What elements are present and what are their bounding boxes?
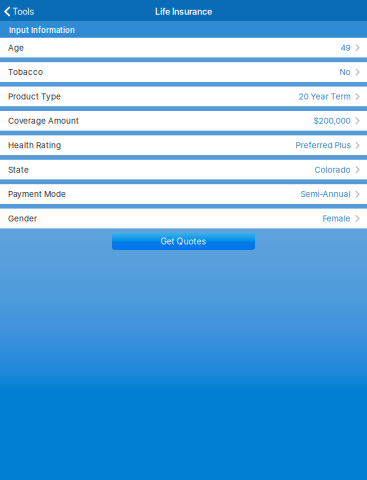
staticText: Product Type	[8, 92, 61, 101]
button[interactable]: Payment Mode	[0, 184, 367, 204]
staticText: Semi-Annual	[300, 189, 350, 199]
button[interactable]: State	[0, 160, 367, 180]
staticText: Health Rating	[8, 140, 61, 150]
staticText: Preferred Plus	[295, 140, 350, 150]
button[interactable]: Back to Tools	[0, 1, 40, 22]
staticText: Colorado	[314, 165, 350, 175]
button[interactable]: Gender	[0, 209, 367, 228]
staticText: 49	[340, 43, 350, 53]
staticText: No	[339, 67, 350, 77]
button[interactable]: Coverage Amount	[0, 111, 367, 131]
staticText: Gender	[8, 214, 37, 223]
button[interactable]: Health Rating	[0, 135, 367, 155]
staticText: 20 Year Term	[298, 92, 350, 101]
button[interactable]: Product Type	[0, 87, 367, 106]
staticText: Age	[8, 43, 24, 53]
button[interactable]: Tobacco	[0, 62, 367, 82]
button[interactable]: Age	[0, 38, 367, 58]
staticText: $200,000	[313, 116, 350, 126]
staticText: Tools	[12, 6, 34, 17]
staticText: Tobacco	[8, 67, 43, 77]
staticText: Female	[322, 214, 350, 223]
button[interactable]: Get Quotes	[112, 233, 255, 250]
staticText: Input Information	[9, 25, 75, 35]
staticText: Coverage Amount	[8, 116, 79, 126]
staticText: Life Insurance	[155, 6, 212, 17]
staticText: Payment Mode	[8, 189, 66, 199]
staticText: Get Quotes	[160, 236, 206, 247]
staticText: State	[8, 165, 29, 175]
